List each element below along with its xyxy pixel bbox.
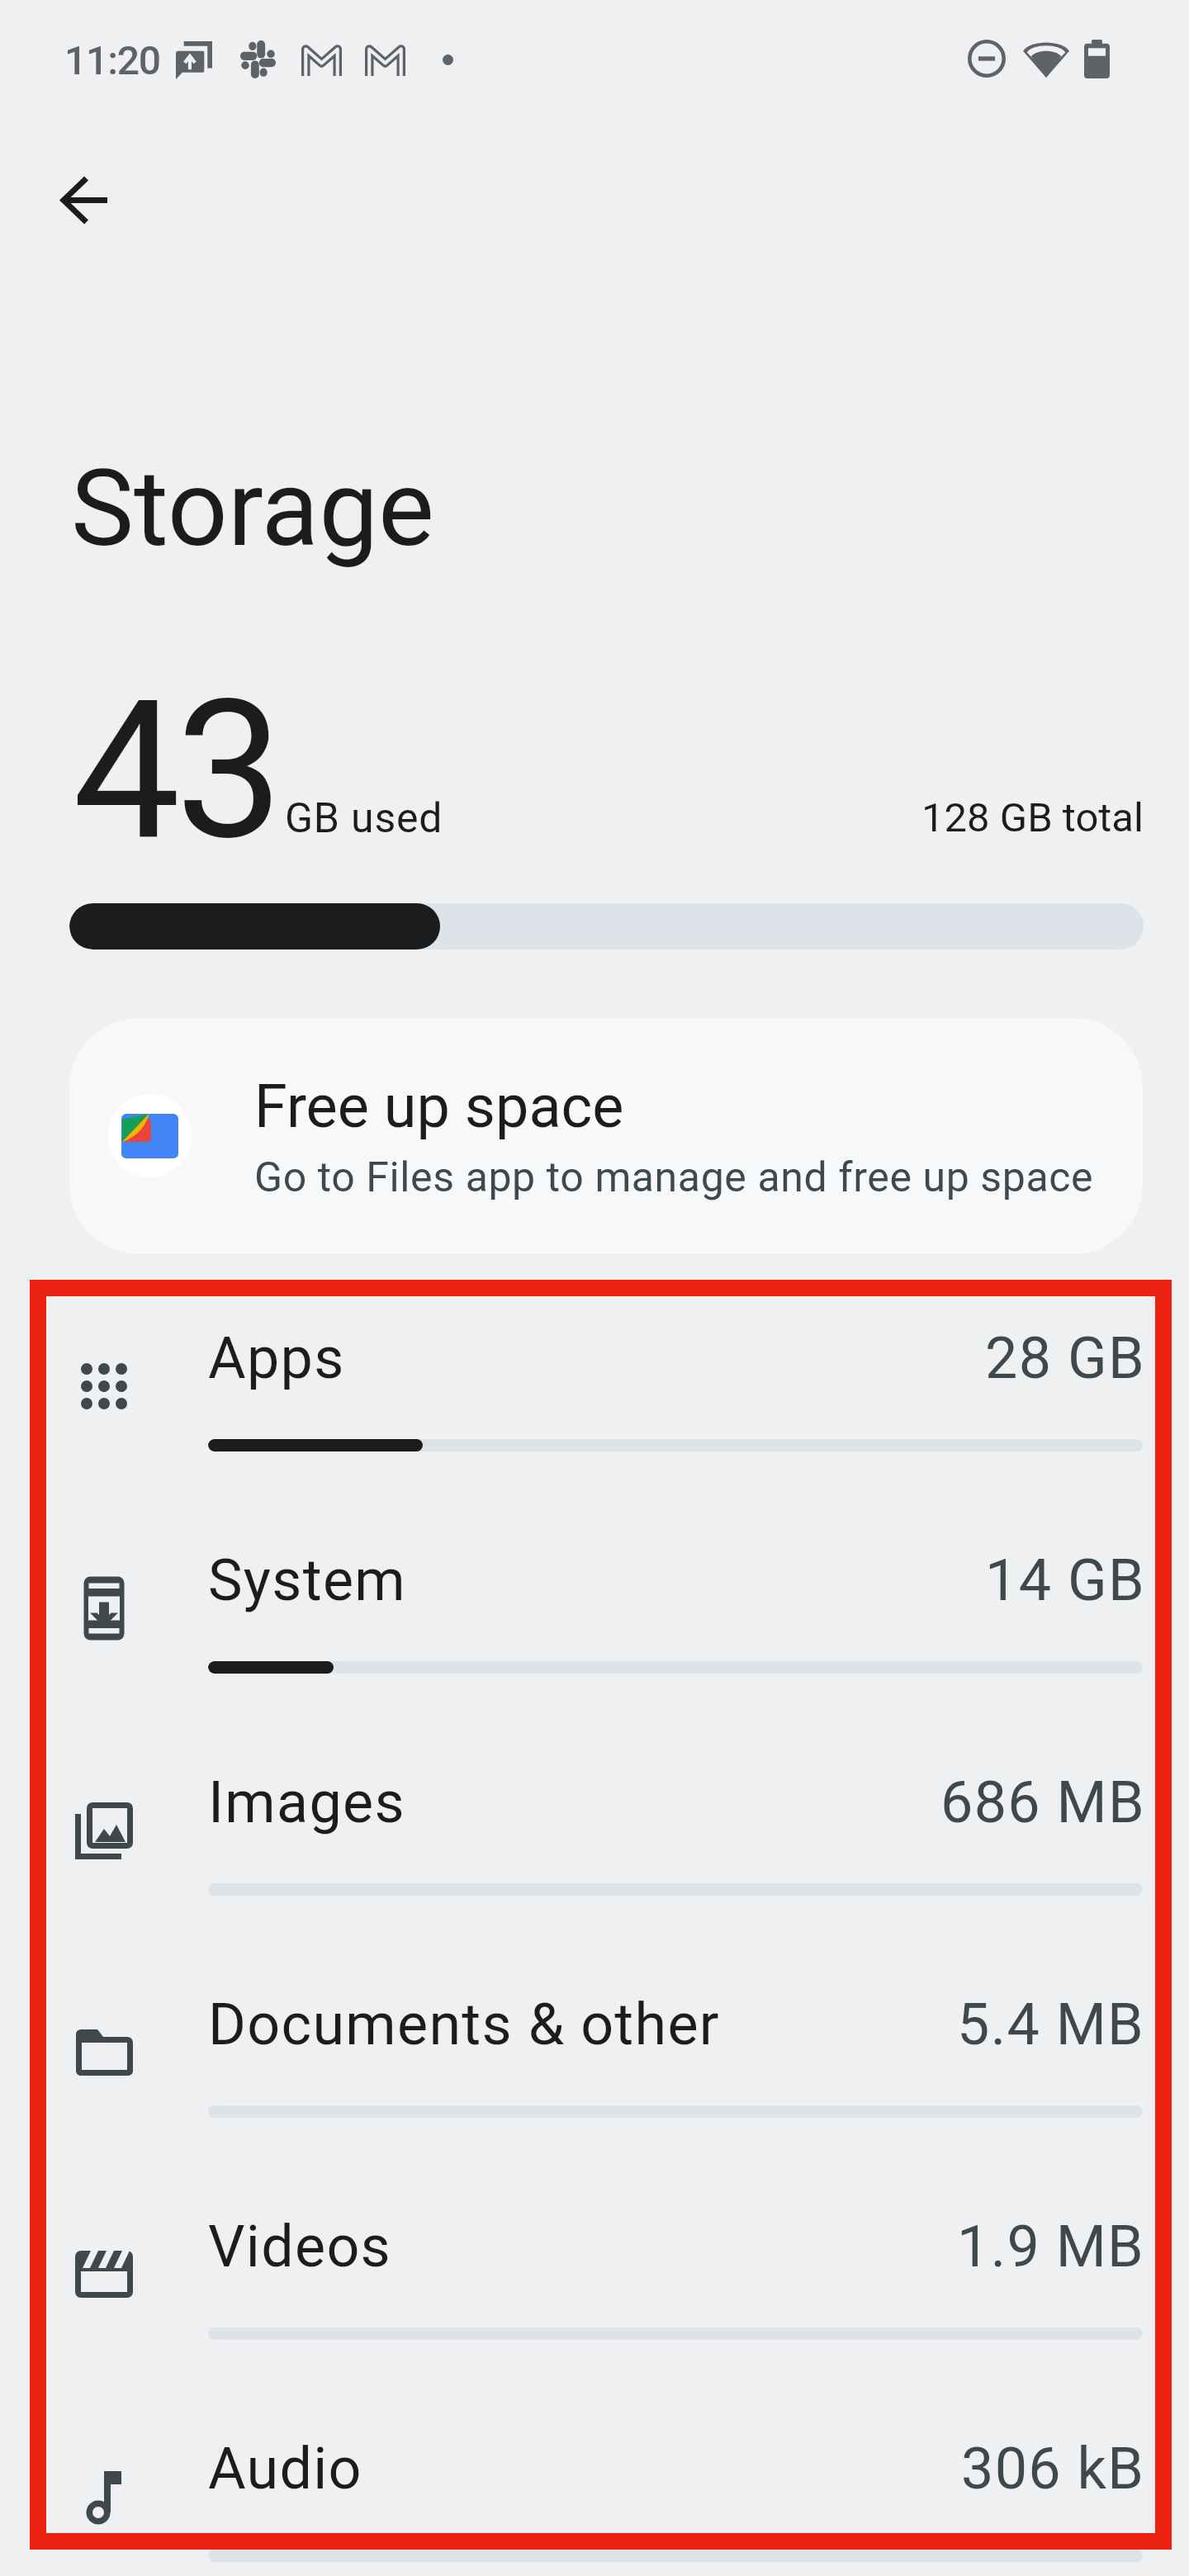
staticText: 11:20 xyxy=(64,37,160,83)
staticText: 14 GB xyxy=(985,1546,1145,1614)
staticText: Videos xyxy=(208,2213,392,2280)
staticText: 43 xyxy=(73,659,278,883)
staticText: 1.9 MB xyxy=(957,2213,1145,2280)
button[interactable]: Free up space xyxy=(69,1018,1143,1254)
staticText: 5.4 MB xyxy=(957,1991,1145,2058)
staticText: GB used xyxy=(285,794,443,843)
staticText: System xyxy=(208,1546,407,1614)
button[interactable]: Images xyxy=(0,1740,1189,1962)
staticText: Audio xyxy=(208,2435,362,2503)
staticText: 128 GB total xyxy=(921,794,1144,841)
staticText: 686 MB xyxy=(940,1769,1145,1836)
button[interactable]: Apps xyxy=(0,1295,1189,1518)
staticText: Apps xyxy=(208,1324,345,1392)
staticText: Storage xyxy=(71,447,434,571)
button[interactable]: Audio xyxy=(0,2406,1189,2576)
staticText: 306 kB xyxy=(961,2435,1145,2503)
staticText: 28 GB xyxy=(985,1324,1145,1392)
button[interactable]: Documents & other xyxy=(0,1962,1189,2184)
button[interactable]: Back xyxy=(31,146,139,253)
staticText: Images xyxy=(208,1769,405,1836)
staticText: Documents & other xyxy=(208,1991,720,2058)
button[interactable]: Videos xyxy=(0,2184,1189,2406)
staticText: Go to Files app to manage and free up sp… xyxy=(254,1153,1094,1202)
button[interactable]: System xyxy=(0,1518,1189,1740)
staticText: Free up space xyxy=(254,1072,624,1141)
